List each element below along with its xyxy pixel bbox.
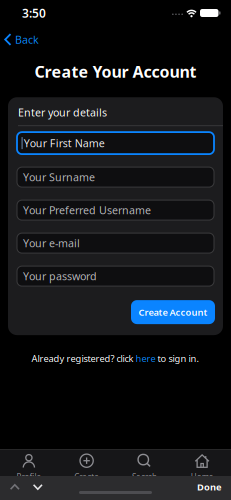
button[interactable]: Your Surname	[17, 167, 214, 187]
staticText: here	[135, 352, 155, 364]
button[interactable]: Profile	[0, 453, 58, 482]
staticText: Back	[15, 32, 39, 47]
staticText: Your Preferred Username	[23, 203, 151, 217]
staticText: Create	[74, 472, 99, 482]
staticText: Enter your details	[18, 105, 107, 119]
button[interactable]: Your Preferred Username	[17, 200, 214, 220]
staticText: 3:50	[22, 5, 46, 21]
staticText: Your e-mail	[23, 236, 80, 250]
button[interactable]: Previous field	[0, 484, 20, 490]
staticText: Done	[197, 481, 222, 493]
staticText: Create Account	[138, 306, 207, 318]
button[interactable]: Your e-mail	[17, 233, 214, 253]
staticText: Your First Name	[24, 136, 105, 150]
staticText: Your Surname	[23, 170, 95, 184]
button[interactable]: Back	[0, 32, 39, 47]
staticText: Search	[132, 472, 157, 482]
button[interactable]: Done	[197, 481, 231, 493]
button[interactable]: Search	[115, 453, 173, 482]
staticText: Already registered? click	[31, 352, 135, 364]
staticText: to sign in.	[155, 352, 199, 364]
button[interactable]: here	[135, 352, 155, 364]
button[interactable]: Your password	[17, 266, 214, 286]
staticText: Profile	[16, 472, 41, 482]
staticText: Home	[191, 472, 214, 482]
button[interactable]: Next field	[20, 484, 43, 490]
button[interactable]: Home	[173, 453, 231, 482]
button[interactable]: Create Account	[131, 300, 215, 324]
button[interactable]: Your First Name	[17, 132, 214, 154]
button[interactable]: Create	[58, 453, 116, 482]
staticText: Create Your Account	[34, 61, 196, 82]
staticText: Your password	[23, 269, 97, 283]
